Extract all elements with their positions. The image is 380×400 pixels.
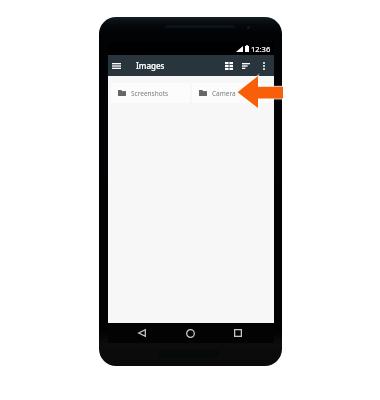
button[interactable]: Sort: [238, 55, 254, 76]
button[interactable]: Camera: [192, 83, 271, 103]
button[interactable]: Recent apps: [228, 323, 248, 343]
button[interactable]: Home: [180, 323, 200, 343]
staticText: Camera: [212, 89, 236, 98]
staticText: Screenshots: [131, 89, 169, 98]
staticText: 12:36: [251, 44, 271, 54]
button[interactable]: Navigation menu: [108, 55, 125, 76]
button[interactable]: Grid view: [220, 55, 237, 76]
button[interactable]: Screenshots: [111, 83, 190, 103]
staticText: Images: [136, 60, 165, 71]
button[interactable]: More options: [256, 55, 272, 76]
button[interactable]: Back: [132, 323, 152, 343]
